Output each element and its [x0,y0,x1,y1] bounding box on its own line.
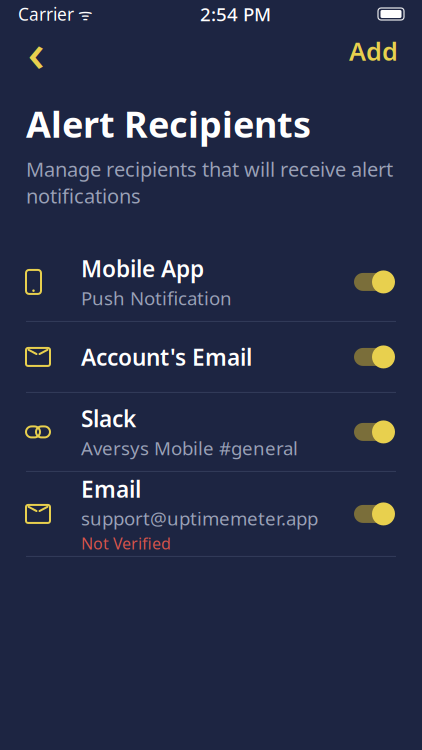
staticText: Aversys Mobile #general [81,436,298,460]
staticText: Alert Recipients [26,100,311,148]
button[interactable]: Add [339,29,408,73]
staticText: ‹ [27,16,44,86]
staticText: Add [349,34,398,68]
button[interactable]: Mobile App [0,243,422,322]
staticText: support@uptimemeter.app [81,506,318,531]
staticText: Account's Email [81,342,252,372]
staticText: Mobile App [81,253,204,284]
staticText: Slack [81,403,136,434]
button[interactable]: Slack [0,393,422,472]
staticText: 2:54 PM [200,2,271,26]
button[interactable]: Account's Email [0,322,422,393]
staticText: Push Notification [81,286,232,310]
button[interactable]: Back [14,29,58,73]
staticText: Carrier [18,2,74,25]
staticText: Not Verified [81,533,171,554]
staticText: ᯤ [74,3,93,25]
staticText: Manage recipients that will receive aler… [26,156,393,209]
staticText: Email [81,474,141,504]
button[interactable]: Email [0,472,422,557]
